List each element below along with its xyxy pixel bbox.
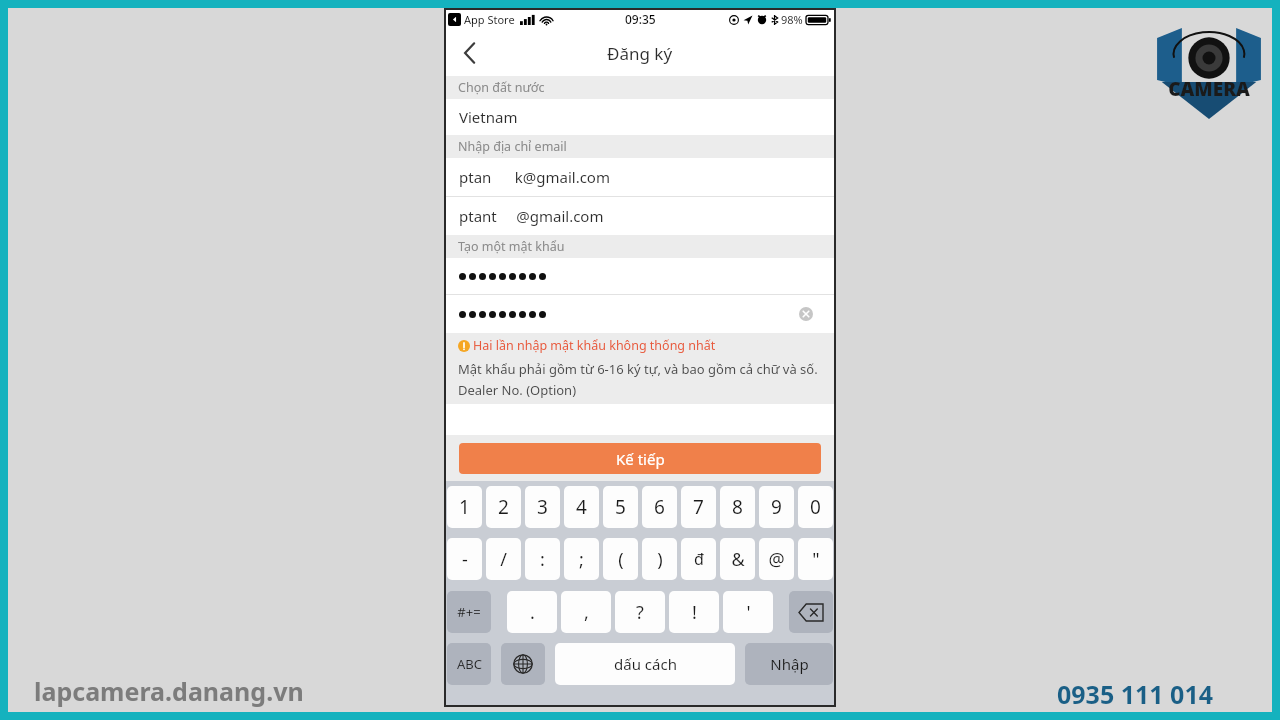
staticText: - — [462, 547, 468, 572]
button[interactable]: & — [720, 538, 755, 580]
staticText: CAMERA — [1168, 76, 1250, 102]
button[interactable]: Clear text — [796, 304, 816, 324]
staticText: . — [530, 600, 535, 625]
staticText: đ — [694, 548, 704, 570]
staticText: / — [500, 547, 507, 572]
button[interactable]: , — [561, 591, 611, 633]
staticText: : — [540, 547, 545, 572]
button[interactable]: đ — [681, 538, 716, 580]
button[interactable]: : — [525, 538, 560, 580]
button[interactable]: ; — [564, 538, 599, 580]
staticText: lapcamera.danang.vn — [34, 674, 304, 708]
staticText: ? — [636, 600, 644, 625]
button[interactable]: 0 — [798, 486, 833, 528]
button[interactable]: Kế tiếp — [459, 443, 821, 474]
staticText: 4 — [576, 494, 587, 520]
button[interactable]: ! — [669, 591, 719, 633]
button[interactable]: / — [486, 538, 521, 580]
staticText: ! — [692, 600, 697, 625]
staticText: " — [812, 547, 820, 572]
staticText: Hai lần nhập mật khẩu không thống nhất — [473, 337, 716, 354]
button[interactable]: - — [447, 538, 482, 580]
staticText: Vietnam — [459, 107, 518, 127]
staticText: Kế tiếp — [616, 449, 665, 469]
button[interactable]: 6 — [642, 486, 677, 528]
staticText: 09:35 — [625, 11, 656, 27]
staticText: ' — [746, 600, 751, 625]
staticText: Dealer No. (Option) — [458, 381, 577, 399]
staticText: Chọn đất nước — [458, 79, 545, 96]
button[interactable]: ? — [615, 591, 665, 633]
staticText: Tạo một mật khẩu — [458, 238, 565, 255]
button[interactable]: Clear text — [444, 295, 836, 333]
staticText: & — [731, 547, 745, 572]
button[interactable]: Vietnam — [444, 99, 836, 135]
staticText: 6 — [654, 494, 665, 520]
staticText: @ — [768, 547, 785, 572]
button[interactable] — [444, 404, 836, 435]
button[interactable] — [444, 258, 836, 294]
staticText: 5 — [615, 494, 626, 520]
button[interactable]: ) — [642, 538, 677, 580]
button[interactable]: #+= — [447, 591, 491, 633]
staticText: 2 — [498, 494, 509, 520]
button[interactable]: . — [507, 591, 557, 633]
button[interactable]: Back — [444, 30, 494, 76]
button[interactable]: 3 — [525, 486, 560, 528]
button[interactable]: ptan k@gmail.com — [444, 158, 836, 196]
staticText: 8 — [732, 494, 743, 520]
staticText: ) — [657, 547, 663, 572]
staticText: 0935 111 014 — [1057, 677, 1214, 711]
button[interactable]: dấu cách — [555, 643, 735, 685]
staticText: 3 — [537, 494, 548, 520]
staticText: ( — [618, 547, 624, 572]
button[interactable]: 8 — [720, 486, 755, 528]
button[interactable]: Backspace — [789, 591, 833, 633]
staticText: 1 — [459, 494, 470, 520]
button[interactable]: 7 — [681, 486, 716, 528]
staticText: Nhập — [770, 654, 809, 674]
button[interactable]: 2 — [486, 486, 521, 528]
staticText: ; — [579, 547, 584, 572]
button[interactable]: ' — [723, 591, 773, 633]
staticText: 7 — [693, 494, 704, 520]
staticText: ptan k@gmail.com — [459, 167, 610, 187]
staticText: Nhập địa chỉ email — [458, 138, 567, 155]
button[interactable]: ABC — [447, 643, 491, 685]
staticText: 98% — [781, 12, 803, 27]
button[interactable]: @ — [759, 538, 794, 580]
button[interactable]: 9 — [759, 486, 794, 528]
staticText: 9 — [771, 494, 782, 520]
staticText: Đăng ký — [607, 42, 673, 65]
staticText: Mật khẩu phải gồm từ 6-16 ký tự, và bao … — [458, 360, 818, 378]
button[interactable]: 5 — [603, 486, 638, 528]
button[interactable]: " — [798, 538, 833, 580]
button[interactable]: Nhập — [745, 643, 833, 685]
staticText: #+= — [457, 603, 481, 621]
staticText: 0 — [810, 494, 821, 520]
staticText: ptant @gmail.com — [459, 206, 604, 226]
staticText: , — [584, 600, 589, 625]
button[interactable]: Change keyboard — [501, 643, 545, 685]
staticText: dấu cách — [614, 654, 677, 674]
button[interactable]: ptant @gmail.com — [444, 197, 836, 235]
button[interactable]: ( — [603, 538, 638, 580]
button[interactable]: 4 — [564, 486, 599, 528]
staticText: App Store — [464, 12, 515, 27]
button[interactable]: 1 — [447, 486, 482, 528]
staticText: ABC — [457, 655, 482, 673]
